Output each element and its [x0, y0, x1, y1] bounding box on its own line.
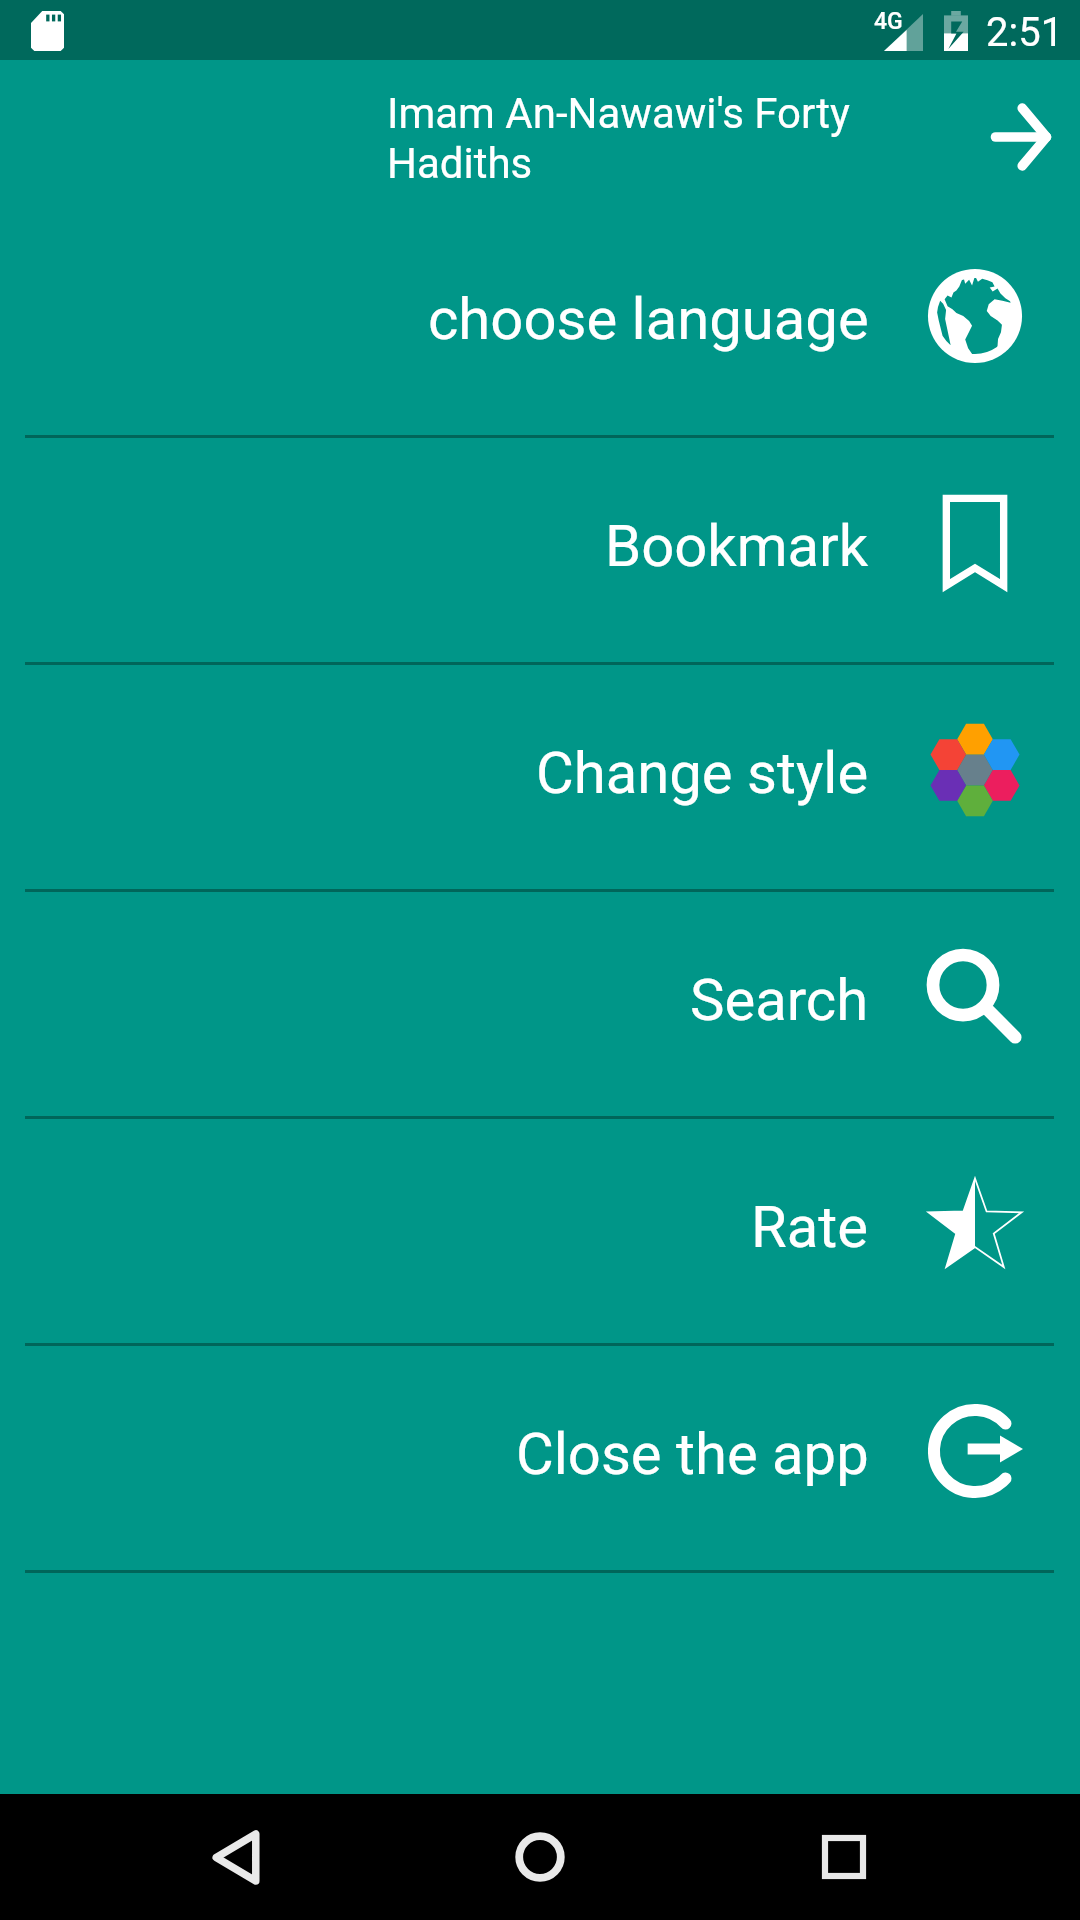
button[interactable]: Bookmark [0, 435, 1080, 662]
button[interactable]: choose language [0, 208, 1080, 435]
staticText: 4G [874, 8, 903, 35]
staticText: Close the app [516, 1420, 869, 1488]
button[interactable]: Forward [964, 90, 1078, 183]
button[interactable]: Recents [754, 1794, 934, 1920]
staticText: choose language [428, 285, 869, 353]
button[interactable]: Change style [0, 662, 1080, 889]
staticText: Imam An-Nawawi's Forty Hadiths [387, 89, 867, 188]
staticText: Rate [751, 1193, 869, 1261]
staticText: Search [690, 966, 869, 1034]
staticText: Change style [536, 739, 869, 807]
staticText: Bookmark [605, 512, 869, 580]
button[interactable]: Rate [0, 1116, 1080, 1343]
staticText: 2:51 [986, 9, 1064, 56]
button[interactable]: Close the app [0, 1343, 1080, 1570]
button[interactable]: Imam An-Nawawi's Forty Hadiths [0, 60, 1080, 208]
button[interactable]: Search [0, 889, 1080, 1116]
button[interactable]: Home [450, 1794, 630, 1920]
button[interactable]: Back [146, 1794, 326, 1920]
